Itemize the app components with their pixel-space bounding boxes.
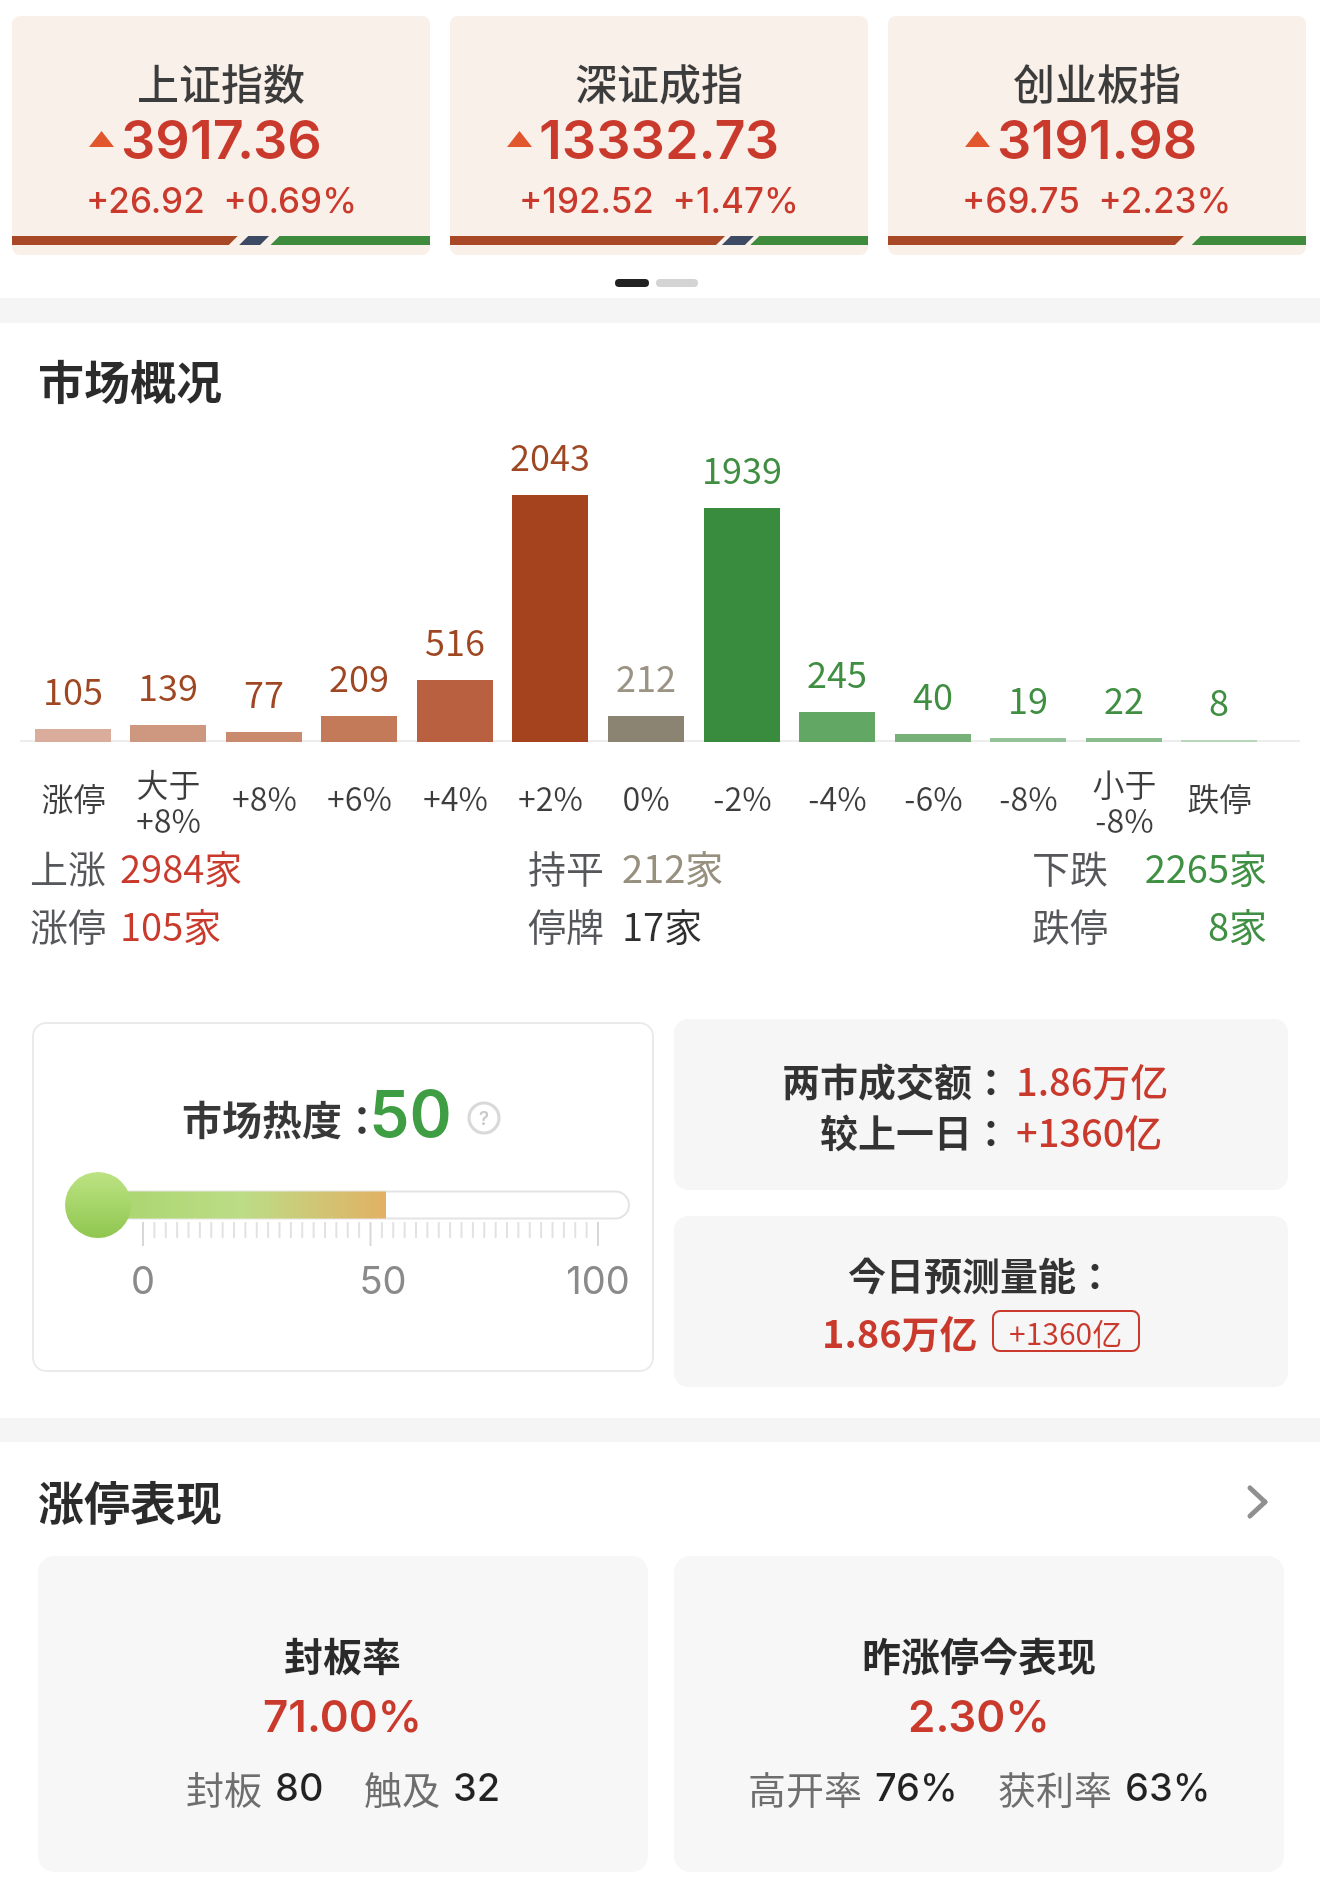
staticText: 22 [1104,672,1144,724]
staticText: 涨停 [41,774,106,820]
staticText: 高开率 [748,1760,863,1815]
staticText: +26.92 +0.69% [86,179,357,221]
staticText: 40 [913,668,953,720]
staticText: -6% [904,774,963,820]
staticText: 昨涨停今表现 [862,1626,1097,1682]
staticText: 32 [453,1764,501,1810]
staticText: 较上一日： [819,1103,1010,1158]
staticText: 105家 [120,897,222,952]
staticText: 获利率 [998,1760,1113,1815]
staticText: 上涨 [30,839,107,894]
staticText: +1360亿 [1016,1103,1163,1158]
staticText: 跌停 [1032,897,1109,952]
button[interactable]: 上证指数 [12,16,430,255]
staticText: 持平 [528,839,605,894]
staticText: +1360亿 [1009,1310,1123,1352]
staticText: 1939 [702,442,782,494]
staticText: 245 [807,646,867,698]
button[interactable]: 创业板指 [888,16,1306,255]
staticText: 涨停表现 [38,1467,222,1534]
staticText: 2984家 [120,839,243,894]
staticText: 两市成交额： [781,1052,1010,1107]
staticText: 今日预测量能： [848,1246,1115,1301]
button[interactable]: 昨涨停今表现 [674,1556,1284,1872]
staticText: 80 [275,1764,324,1810]
staticText: 市场热度： [182,1089,382,1147]
staticText: 涨停 [30,897,107,952]
staticText: 下跌 [1032,839,1109,894]
staticText: +69.75 +2.23% [962,179,1232,221]
staticText: 0% [622,774,670,820]
staticText: 8家 [1207,897,1267,952]
staticText: 76% [875,1764,958,1810]
staticText: 触及 [364,1760,441,1815]
staticText: 50 [359,1257,407,1303]
staticText: 封板率 [284,1626,402,1682]
button[interactable]: 今日预测量能： [674,1216,1288,1387]
staticText: 小于 -8% [1092,760,1157,836]
staticText: 2265家 [1144,839,1267,894]
staticText: 1.86万亿 [822,1304,978,1359]
staticText: 19 [1008,672,1048,724]
staticText: +192.52 +1.47% [519,179,799,221]
button[interactable]: 深证成指 [450,16,868,255]
staticText: +4% [423,774,488,820]
staticText: 市场概况 [38,346,222,413]
staticText: 跌停 [1187,774,1252,820]
staticText: ? [479,1107,490,1130]
staticText: 139 [138,659,198,711]
staticText: 63% [1125,1764,1211,1810]
staticText: 大于 +8% [136,760,201,836]
staticText: 209 [329,650,389,702]
staticText: 100 [566,1257,630,1303]
staticText: 封板 [186,1760,263,1815]
staticText: -4% [808,774,867,820]
staticText: 1.86万亿 [1016,1052,1169,1107]
staticText: -8% [999,774,1058,820]
staticText: 0 [131,1257,155,1303]
staticText: 3917.36 [121,107,322,172]
staticText: 71.00% [263,1689,423,1742]
staticText: 105 [43,663,103,715]
staticText: +6% [327,774,392,820]
staticText: +8% [232,774,297,820]
staticText: 17家 [622,897,703,952]
staticText: 上证指数 [137,51,306,112]
staticText: 516 [425,614,485,666]
staticText: +2% [518,774,583,820]
staticText: 13332.73 [539,107,780,172]
button[interactable]: 市场热度： [32,1022,654,1372]
button[interactable]: 封板率 [38,1556,648,1872]
staticText: 212 [616,650,676,702]
staticText: 50 [369,1075,452,1152]
button[interactable]: 两市成交额： [674,1019,1288,1190]
staticText: 创业板指 [1013,51,1182,112]
staticText: 3191.98 [997,107,1198,172]
staticText: 77 [244,666,284,718]
staticText: 停牌 [528,897,605,952]
staticText: 深证成指 [575,51,744,112]
staticText: 212家 [622,839,724,894]
staticText: -2% [713,774,772,820]
staticText: 2.30% [908,1689,1050,1742]
staticText: 8 [1209,674,1229,726]
staticText: 2043 [510,429,590,481]
